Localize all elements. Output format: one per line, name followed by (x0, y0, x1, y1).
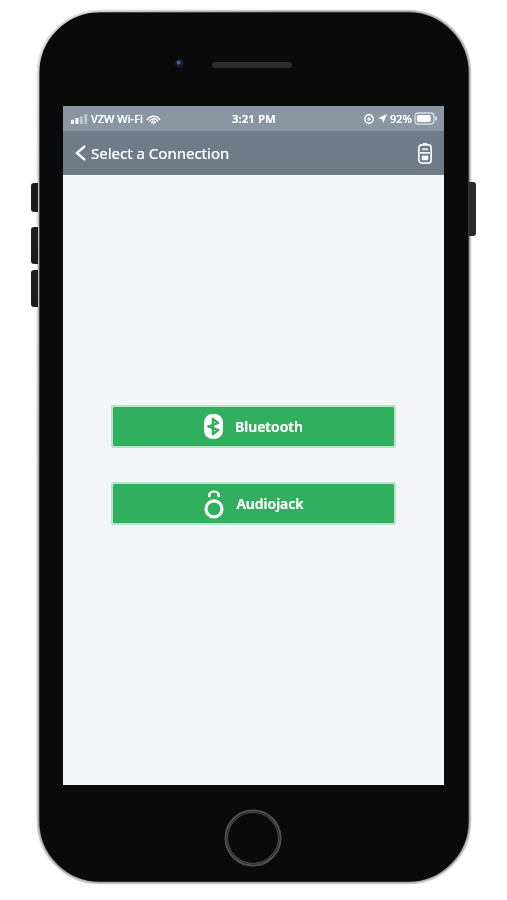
staticText: Audiojack (236, 494, 304, 513)
other: Volume down (31, 270, 38, 307)
button[interactable]: Select a Connection (63, 137, 240, 169)
button[interactable]: Device status (406, 135, 444, 172)
other: Volume up (31, 227, 38, 264)
button[interactable]: Audiojack (113, 484, 394, 523)
other: Silent switch (31, 183, 38, 212)
staticText: 3:21 PM (232, 111, 276, 127)
staticText: VZW Wi-Fi (91, 111, 143, 126)
other: Home (224, 809, 282, 867)
staticText: Bluetooth (235, 417, 303, 436)
staticText: Select a Connection (91, 143, 230, 163)
other: Power (469, 182, 476, 236)
button[interactable]: Bluetooth (113, 407, 394, 446)
staticText: 92% (390, 111, 412, 126)
